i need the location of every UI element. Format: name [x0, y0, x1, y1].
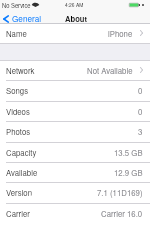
button[interactable]: Videos — [0, 102, 150, 122]
staticText: Network — [6, 65, 35, 76]
staticText: 13.5 GB — [114, 147, 143, 158]
staticText: Carrier 16.0 — [101, 208, 143, 219]
staticText: No Service — [2, 1, 31, 9]
staticText: Available — [6, 167, 38, 178]
staticText: Version — [6, 187, 33, 198]
staticText: Photos — [6, 126, 31, 137]
button[interactable]: Network — [0, 61, 150, 81]
button[interactable]: Songs — [0, 81, 150, 102]
button[interactable]: Available — [0, 163, 150, 183]
staticText: 7.1 (11D169) — [97, 187, 143, 198]
button[interactable]: Back to General — [3, 12, 42, 26]
staticText: iPhone — [108, 28, 133, 39]
button[interactable]: Capacity — [0, 143, 150, 163]
staticText: General — [12, 13, 42, 25]
staticText: 4:26 AM — [65, 1, 84, 8]
staticText: Songs — [6, 85, 29, 96]
staticText: About — [65, 13, 87, 24]
button[interactable]: Version — [0, 183, 150, 204]
staticText: Carrier — [6, 208, 30, 219]
staticText: Name — [6, 28, 27, 39]
staticText: Videos — [6, 106, 30, 117]
button[interactable]: Photos — [0, 122, 150, 143]
staticText: 0 — [138, 85, 143, 96]
staticText: Not Available — [87, 65, 133, 76]
staticText: 3 — [138, 126, 143, 137]
button[interactable]: Carrier — [0, 204, 150, 225]
staticText: 12.9 GB — [114, 167, 143, 178]
button[interactable]: Name — [0, 24, 150, 44]
staticText: Capacity — [6, 147, 37, 158]
staticText: 0 — [138, 106, 143, 117]
